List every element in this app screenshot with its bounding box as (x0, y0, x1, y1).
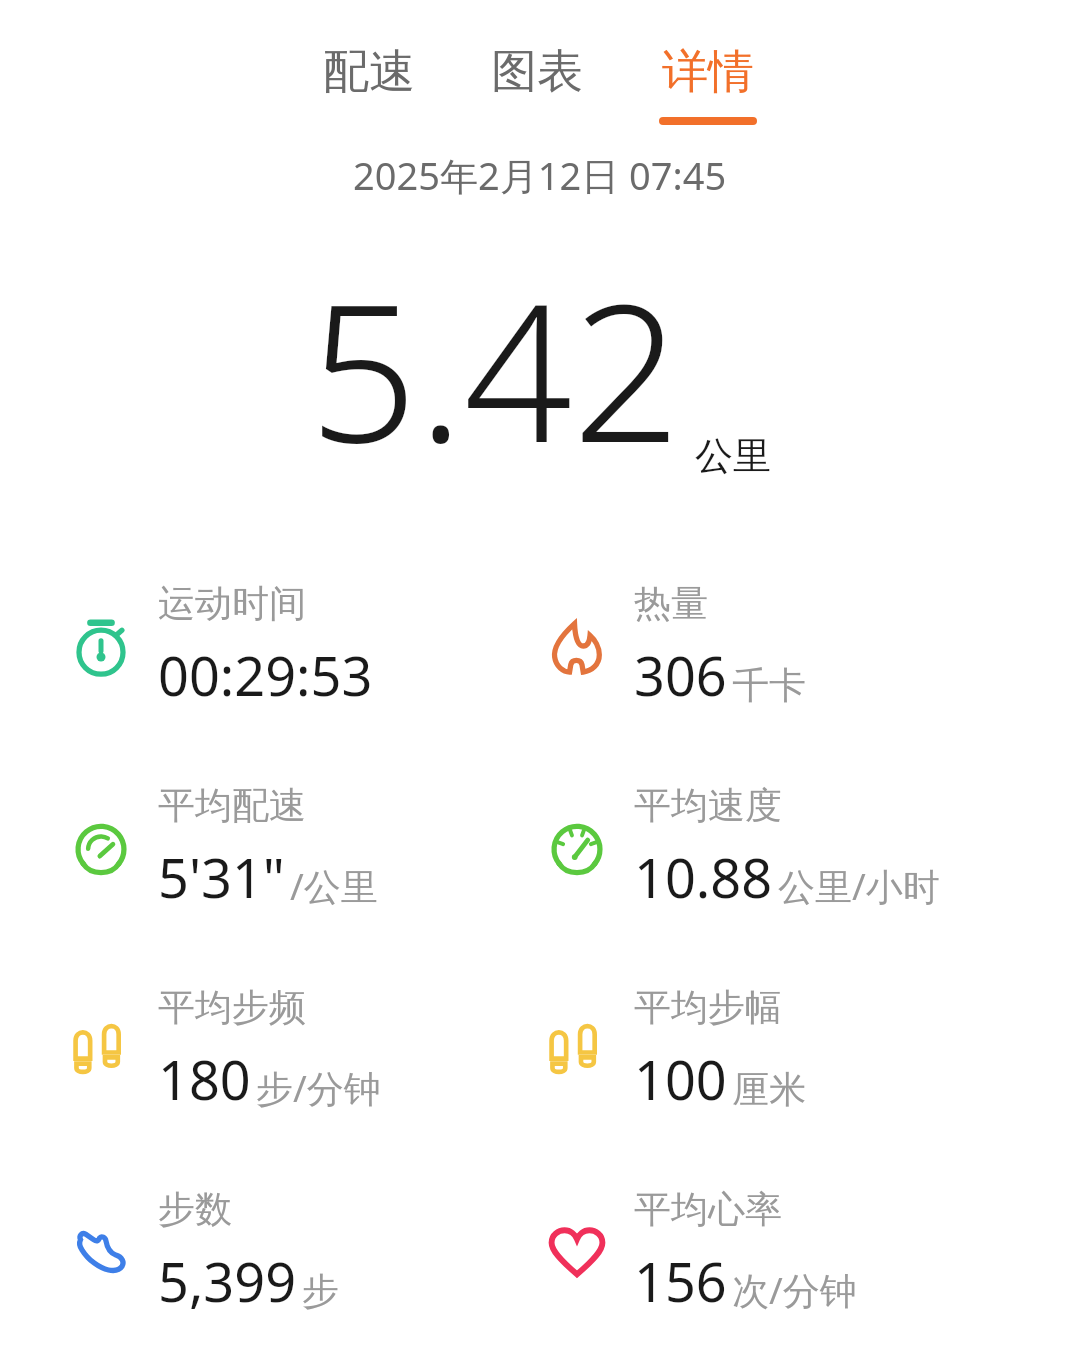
other: 热量 (546, 615, 608, 677)
button[interactable]: 平均步幅 (540, 984, 1080, 1116)
staticText: 平均配速 (158, 782, 306, 829)
other: 步数 (70, 1221, 132, 1283)
staticText: 10.88 (634, 840, 773, 914)
other: 平均步频 (70, 1019, 132, 1081)
other: 平均速度 (546, 817, 608, 879)
staticText: 热量 (634, 580, 708, 627)
staticText: 次/分钟 (732, 1264, 857, 1315)
staticText: 156 (634, 1244, 727, 1318)
staticText: 5,399 (158, 1244, 297, 1318)
button[interactable]: 热量 (540, 580, 1080, 712)
staticText: 平均步幅 (634, 984, 782, 1031)
staticText: 5'31" (158, 840, 285, 914)
button[interactable]: 平均心率 (540, 1186, 1080, 1318)
staticText: 00:29:53 (158, 638, 373, 712)
staticText: 配速 (323, 43, 415, 101)
staticText: 平均速度 (634, 782, 782, 829)
button[interactable]: 运动时间 (0, 580, 540, 712)
button[interactable]: 详情 (645, 41, 771, 127)
staticText: /公里 (290, 860, 378, 911)
staticText: 步数 (158, 1186, 232, 1233)
other: 平均配速 (70, 817, 132, 879)
staticText: 详情 (662, 43, 754, 101)
staticText: 公里 (695, 432, 771, 480)
staticText: 千卡 (732, 662, 806, 709)
staticText: 公里/小时 (778, 860, 940, 911)
button[interactable]: 平均速度 (540, 782, 1080, 914)
button[interactable]: 配速 (309, 41, 429, 127)
other: 平均步幅 (546, 1019, 608, 1081)
button[interactable]: 平均步频 (0, 984, 540, 1116)
staticText: 5.42 (309, 239, 681, 498)
other: 运动时间 (70, 615, 132, 677)
button[interactable]: 步数 (0, 1186, 540, 1318)
staticText: 180 (158, 1042, 251, 1116)
staticText: 306 (634, 638, 727, 712)
staticText: 运动时间 (158, 580, 306, 627)
other: 平均心率 (546, 1221, 608, 1283)
staticText: 步/分钟 (256, 1062, 381, 1113)
staticText: 平均心率 (634, 1186, 782, 1233)
button[interactable]: 图表 (477, 41, 597, 127)
staticText: 平均步频 (158, 984, 306, 1031)
button[interactable]: 平均配速 (0, 782, 540, 914)
staticText: 图表 (491, 43, 583, 101)
staticText: 2025年2月12日 07:45 (353, 149, 727, 201)
staticText: 100 (634, 1042, 727, 1116)
staticText: 步 (302, 1268, 339, 1315)
staticText: 厘米 (732, 1066, 806, 1113)
